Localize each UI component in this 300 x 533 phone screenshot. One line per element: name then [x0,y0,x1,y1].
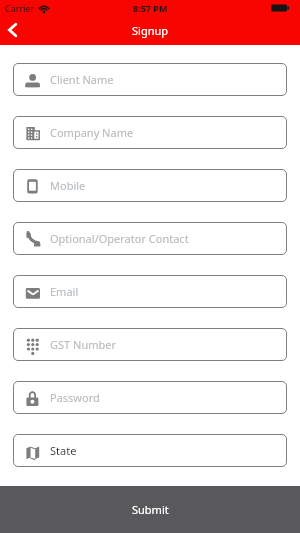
button[interactable]: Client Name [13,63,287,96]
staticText: Optional/Operator Contact [50,231,189,246]
button[interactable]: Mobile [13,169,287,202]
staticText: Client Name [50,72,114,87]
staticText: Mobile [50,178,86,193]
button[interactable] [4,19,20,41]
button[interactable]: State [13,434,287,467]
button[interactable]: Password [13,381,287,414]
staticText: Password [50,390,100,405]
button[interactable]: GST Number [13,328,287,361]
staticText: Email [50,284,79,299]
staticText: Signup [132,23,169,38]
staticText: GST Number [50,337,116,352]
staticText: Company Name [50,125,134,140]
button[interactable]: Optional/Operator Contact [13,222,287,255]
staticText: State [50,443,77,458]
button[interactable]: Submit [0,486,300,533]
staticText: Submit [132,502,169,517]
button[interactable]: Company Name [13,116,287,149]
button[interactable]: Email [13,275,287,308]
staticText: Carrier [5,2,35,14]
staticText: 8:57 PM [133,2,168,14]
